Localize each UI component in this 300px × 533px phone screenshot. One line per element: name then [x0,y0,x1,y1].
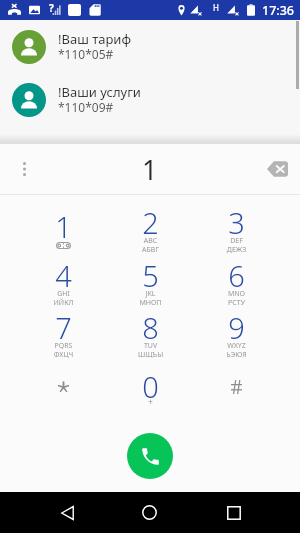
button[interactable]: 7 [20,308,107,360]
staticText: *110*09# [58,99,114,115]
staticText: ИЙКЛ [20,298,107,308]
staticText: DEF [193,236,280,246]
staticText: ШЩЪЫ [107,350,194,360]
button[interactable]: !Ваши услуги [0,73,300,126]
staticText: ЬЭЮЯ [193,350,280,360]
staticText: TUV [107,341,194,351]
button[interactable]: 2 [107,203,194,255]
staticText: АБВГ [107,245,194,255]
button[interactable]: 9 [193,308,280,360]
button[interactable]: 4 [20,256,107,308]
button[interactable]: 6 [193,256,280,308]
button[interactable]: 5 [107,256,194,308]
staticText: 8 [107,308,194,347]
staticText: 2 [107,203,194,242]
staticText: !Ваши услуги [58,83,141,101]
button[interactable] [20,367,107,407]
staticText: JKL [107,289,194,299]
button[interactable]: Call [127,433,173,479]
staticText: 3 [193,203,280,242]
staticText: GHI [20,289,107,299]
button[interactable]: 3 [193,203,280,255]
button[interactable]: 0 [107,367,194,407]
staticText: 1 [142,151,158,188]
staticText: 5 [107,256,194,295]
button[interactable]: 8 [107,308,194,360]
staticText: ABC [107,236,194,246]
staticText: МНОП [107,298,194,308]
staticText: ДЕЖЗ [193,245,280,255]
staticText: !Ваш тариф [58,30,132,48]
button[interactable]: Backspace [260,152,295,186]
staticText: PQRS [20,341,107,351]
button[interactable]: Back [47,492,88,533]
staticText: *110*05# [58,46,114,62]
button[interactable]: Recents [213,492,254,533]
staticText: 1 [20,207,107,246]
staticText: ? [49,1,54,15]
button[interactable]: Home [129,492,170,533]
staticText: MNO [193,289,280,299]
button[interactable]: !Ваш тариф [0,20,300,73]
button[interactable]: More options [10,152,38,186]
staticText: РСТУ [193,298,280,308]
staticText: 17:36 [262,2,295,19]
staticText: + [107,396,194,407]
button[interactable] [193,367,280,407]
staticText: H [213,2,219,13]
staticText: 6 [193,256,280,295]
staticText: ФХЦЧ [20,350,107,360]
staticText: WXYZ [193,341,280,351]
button[interactable]: 1 [20,203,107,255]
staticText: 7 [20,308,107,347]
staticText: 4 [20,256,107,295]
staticText: 9 [193,308,280,347]
staticText: 0 [107,367,194,406]
